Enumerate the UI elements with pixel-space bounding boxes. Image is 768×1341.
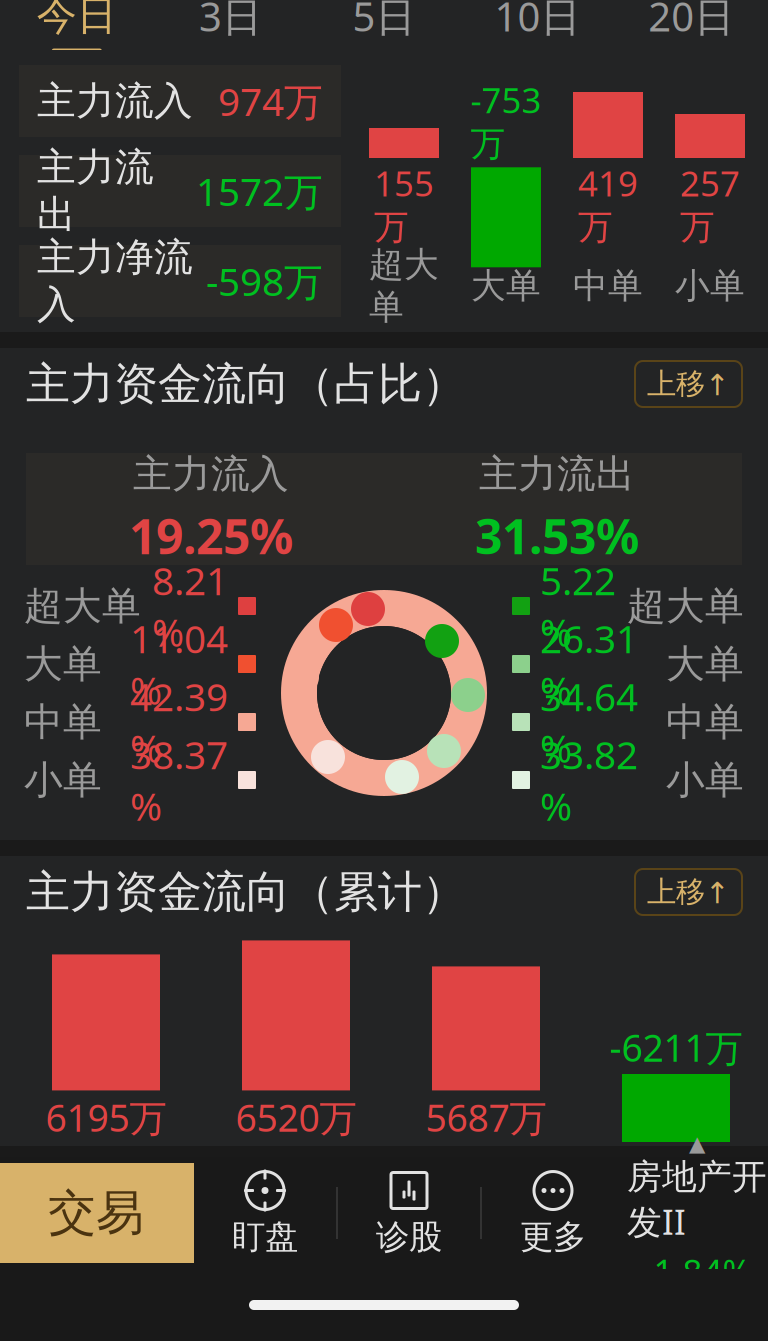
staticText: 诊股 <box>376 1216 442 1257</box>
staticText: 超大单 <box>369 243 439 329</box>
button[interactable]: ▲ <box>624 1157 768 1269</box>
staticText: -1.84% <box>642 1248 751 1294</box>
staticText: 中单 <box>24 698 102 746</box>
staticText: 主力流入 <box>133 450 289 498</box>
button[interactable]: 诊股 <box>338 1157 480 1269</box>
staticText: 主力流出 <box>37 143 154 238</box>
staticText: 房地产开发II <box>627 1156 767 1244</box>
button[interactable]: 交易 <box>0 1163 194 1263</box>
staticText: 26.31% <box>540 613 638 715</box>
staticText: 大单 <box>666 640 744 688</box>
staticText: 上移↑ <box>647 366 730 402</box>
staticText: 5687万 <box>425 1092 546 1142</box>
staticText: 38.37% <box>130 729 228 831</box>
button[interactable]: 20日 <box>614 0 768 50</box>
staticText: 大单 <box>471 265 541 307</box>
staticText: 19.25% <box>129 504 293 568</box>
staticText: 盯盘 <box>232 1216 298 1257</box>
staticText: 主力流出 <box>479 450 635 498</box>
button[interactable]: 今日 <box>0 0 154 50</box>
staticText: 主力净流入 <box>37 233 193 328</box>
staticText: 3日 <box>199 0 262 42</box>
staticText: ▲ <box>689 1132 705 1156</box>
staticText: 主力资金流向（占比） <box>26 357 466 411</box>
staticText: 11.04% <box>130 613 228 715</box>
button[interactable]: 3日 <box>154 0 307 50</box>
button[interactable]: 10日 <box>461 0 614 50</box>
staticText: 交易 <box>48 1183 144 1242</box>
staticText: 419万 <box>578 160 638 249</box>
staticText: 974万 <box>218 75 323 127</box>
staticText: 上移↑ <box>647 874 730 910</box>
staticText: -6211万 <box>609 1022 742 1072</box>
staticText: 6195万 <box>45 1092 166 1142</box>
staticText: 超大单 <box>627 582 744 630</box>
staticText: 今日 <box>37 0 117 40</box>
staticText: 31.53% <box>475 504 639 568</box>
staticText: 5日 <box>352 0 415 42</box>
staticText: -598万 <box>206 255 323 307</box>
button[interactable]: 上移↑ <box>635 869 742 915</box>
staticText: 5.22% <box>540 555 616 657</box>
button[interactable]: 更多 <box>482 1157 624 1269</box>
staticText: 1572万 <box>196 165 323 217</box>
staticText: 主力流入 <box>37 77 193 125</box>
staticText: 大单 <box>24 640 102 688</box>
staticText: 20日 <box>648 0 734 42</box>
button[interactable]: 5日 <box>307 0 461 50</box>
staticText: 155万 <box>374 160 434 249</box>
button[interactable]: 上移↑ <box>635 361 742 407</box>
staticText: 中单 <box>666 698 744 746</box>
staticText: 42.39% <box>130 671 228 773</box>
staticText: 33.82% <box>540 729 638 831</box>
staticText: 小单 <box>675 265 745 307</box>
staticText: 257万 <box>680 160 740 249</box>
staticText: 中单 <box>573 265 643 307</box>
staticText: -753万 <box>470 77 541 165</box>
staticText: 超大单 <box>24 582 141 630</box>
staticText: 小单 <box>666 756 744 804</box>
staticText: 主力资金流向（累计） <box>26 865 466 919</box>
staticText: 8.21% <box>152 555 228 657</box>
staticText: 更多 <box>520 1216 586 1257</box>
staticText: 34.64% <box>540 671 638 773</box>
button[interactable]: 盯盘 <box>194 1157 336 1269</box>
staticText: 6520万 <box>235 1092 356 1142</box>
staticText: 10日 <box>495 0 581 42</box>
staticText: 小单 <box>24 756 102 804</box>
